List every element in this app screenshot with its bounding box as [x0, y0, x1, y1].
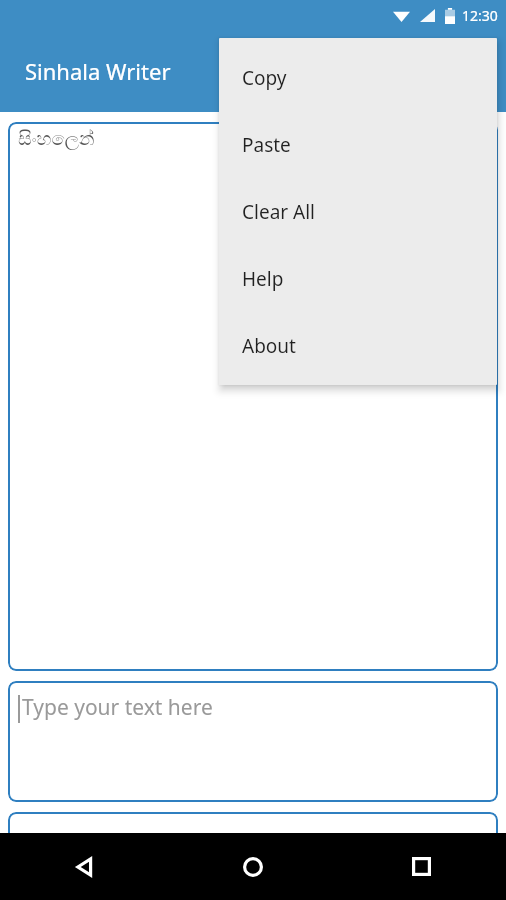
button[interactable]: Back [0, 833, 168, 900]
staticText: Type your text here [22, 693, 213, 722]
button[interactable]: Help [219, 245, 497, 312]
button[interactable]: About [219, 312, 497, 379]
button[interactable]: සිංහලෙන් [8, 122, 498, 671]
staticText: Clear All [242, 199, 316, 225]
staticText: Paste [242, 132, 291, 158]
staticText: About [242, 333, 296, 359]
staticText: Help [242, 266, 284, 292]
staticText: Sinhala Writer [25, 56, 171, 86]
button[interactable]: Home [168, 833, 337, 900]
button[interactable]: Clear All [219, 178, 497, 245]
staticText: Copy [242, 65, 287, 91]
button[interactable]: Type your text here [8, 681, 498, 802]
staticText: සිංහලෙන් [18, 130, 95, 149]
button[interactable]: Copy [219, 44, 497, 111]
button[interactable]: Paste [219, 111, 497, 178]
button[interactable]: Recent apps [337, 833, 506, 900]
staticText: 12:30 [462, 6, 498, 25]
